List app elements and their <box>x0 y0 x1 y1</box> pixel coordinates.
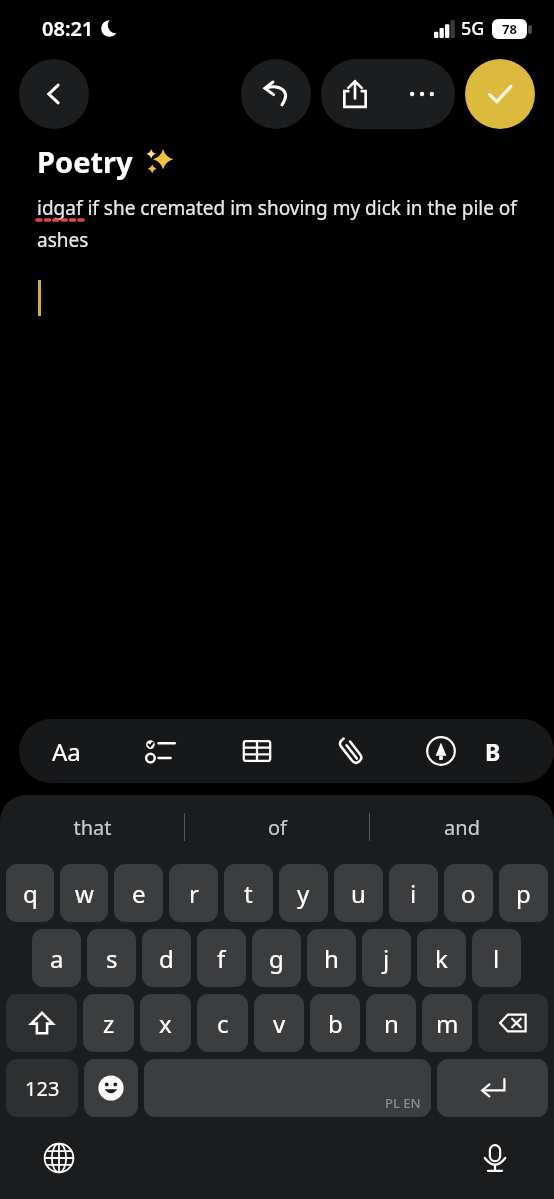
button[interactable]: m <box>422 994 472 1052</box>
button[interactable]: that <box>0 795 184 859</box>
staticText: Poetry <box>37 142 133 181</box>
button[interactable]: z <box>83 994 134 1052</box>
staticText: 78 <box>502 20 517 38</box>
button[interactable]: n <box>366 994 416 1052</box>
button[interactable]: f <box>197 929 246 987</box>
button[interactable]: Space <box>144 1059 431 1117</box>
staticText: u <box>351 877 366 910</box>
button[interactable]: b <box>310 994 360 1052</box>
button[interactable]: r <box>169 864 218 922</box>
staticText: m <box>436 1007 459 1040</box>
button[interactable]: v <box>254 994 304 1052</box>
staticText: i <box>410 877 417 910</box>
staticText: 123 <box>25 1075 60 1102</box>
button[interactable]: 123 <box>6 1059 78 1117</box>
button[interactable]: g <box>252 929 301 987</box>
button[interactable]: k <box>417 929 466 987</box>
button[interactable]: Insert table <box>209 719 305 783</box>
button[interactable]: u <box>334 864 383 922</box>
button[interactable]: a <box>32 929 81 987</box>
staticText: f <box>217 942 226 975</box>
button[interactable]: d <box>142 929 191 987</box>
button[interactable]: Done <box>465 59 535 129</box>
staticText: q <box>23 877 38 910</box>
button[interactable]: Voice input <box>470 1133 520 1183</box>
button[interactable]: Bold <box>485 719 525 783</box>
button[interactable]: Backspace <box>478 994 548 1052</box>
button[interactable]: j <box>362 929 411 987</box>
button[interactable]: x <box>140 994 191 1052</box>
button[interactable]: Enter <box>437 1059 548 1117</box>
button[interactable]: i <box>389 864 438 922</box>
button[interactable]: More options <box>388 59 455 129</box>
staticText: p <box>516 877 531 910</box>
staticText: 5G <box>461 16 485 41</box>
button[interactable]: p <box>499 864 548 922</box>
staticText: 08:21 <box>42 15 94 42</box>
button[interactable]: w <box>60 864 108 922</box>
staticText: idgaf if she cremated im shoving my dick… <box>37 195 517 253</box>
button[interactable]: Draw <box>397 719 485 783</box>
staticText: a <box>50 942 64 975</box>
staticText: that <box>73 814 112 841</box>
button[interactable]: Share <box>321 59 388 129</box>
button[interactable]: s <box>87 929 136 987</box>
staticText: c <box>217 1007 229 1040</box>
button[interactable]: e <box>114 864 163 922</box>
staticText: PL EN <box>385 1094 421 1112</box>
button[interactable]: of <box>185 795 369 859</box>
button[interactable]: l <box>472 929 521 987</box>
button[interactable]: Attach file <box>305 719 397 783</box>
staticText: r <box>189 877 199 910</box>
staticText: z <box>103 1007 115 1040</box>
button[interactable]: y <box>279 864 328 922</box>
staticText: g <box>269 942 284 975</box>
button[interactable]: Emoji <box>84 1059 138 1117</box>
staticText: l <box>493 942 500 975</box>
staticText: b <box>328 1007 343 1040</box>
staticText: v <box>273 1007 286 1040</box>
button[interactable]: c <box>197 994 248 1052</box>
button[interactable]: and <box>370 795 554 859</box>
staticText: w <box>75 877 94 910</box>
staticText: y <box>297 877 310 910</box>
button[interactable]: Undo <box>241 59 311 129</box>
staticText: n <box>384 1007 399 1040</box>
staticText: s <box>106 942 118 975</box>
staticText: Aa <box>52 735 81 768</box>
staticText: t <box>244 877 253 910</box>
staticText: o <box>461 877 476 910</box>
button[interactable]: Text style <box>19 719 113 783</box>
button[interactable]: o <box>444 864 493 922</box>
button[interactable]: Back <box>19 59 89 129</box>
staticText: e <box>132 877 146 910</box>
button[interactable]: Checklist <box>113 719 209 783</box>
button[interactable]: q <box>6 864 54 922</box>
staticText: and <box>444 814 480 841</box>
staticText: k <box>435 942 448 975</box>
staticText: x <box>159 1007 172 1040</box>
button[interactable]: t <box>224 864 273 922</box>
staticText: h <box>324 942 339 975</box>
button[interactable]: Change language <box>34 1133 84 1183</box>
button[interactable]: Shift <box>6 994 77 1052</box>
staticText: B <box>485 736 501 767</box>
staticText: of <box>268 814 287 841</box>
button[interactable]: h <box>307 929 356 987</box>
staticText: d <box>159 942 174 975</box>
staticText: j <box>383 942 390 975</box>
